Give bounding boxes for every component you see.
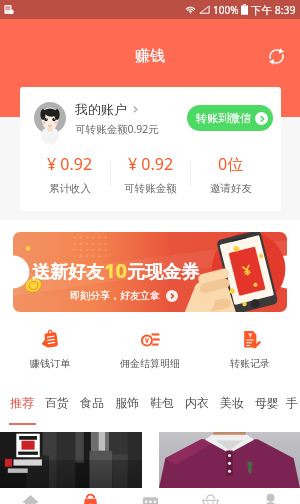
staticText: 转账到微信 <box>196 111 251 125</box>
button[interactable]: Categories <box>120 488 180 504</box>
staticText: 送新好友 <box>32 261 104 284</box>
staticText: 可转账金额 <box>124 182 177 195</box>
staticText: 手 <box>286 395 298 410</box>
staticText: 0位 <box>218 153 244 175</box>
staticText: 美妆 <box>220 395 244 410</box>
button[interactable]: 佣金结算明细 <box>100 320 200 378</box>
staticText: 赚钱 <box>135 47 165 66</box>
staticText: 服饰 <box>115 395 139 410</box>
button[interactable]: 0位 <box>191 143 270 205</box>
button[interactable]: 推荐 <box>4 388 39 416</box>
button[interactable]: 食品 <box>74 388 109 416</box>
staticText: 下午 8:39 <box>251 3 296 17</box>
button[interactable]: 赚钱订单 <box>0 320 100 378</box>
button[interactable]: ¥ 0.92 <box>111 143 190 205</box>
staticText: 100% <box>213 3 239 17</box>
staticText: 推荐 <box>10 395 34 410</box>
button[interactable]: Home <box>0 488 60 504</box>
staticText: 累计收入 <box>49 182 91 195</box>
staticText: 转账记录 <box>230 357 270 370</box>
staticText: ¥ 0.92 <box>47 153 93 175</box>
button[interactable]: 送新好友 <box>13 232 287 312</box>
button[interactable]: 服饰 <box>109 388 144 416</box>
staticText: 佣金结算明细 <box>120 357 180 370</box>
staticText: 鞋包 <box>150 395 174 410</box>
button[interactable] <box>159 432 300 488</box>
button[interactable]: 百货 <box>39 388 74 416</box>
staticText: ¥ 0.92 <box>128 153 174 175</box>
button[interactable]: Refresh <box>261 41 291 71</box>
button[interactable]: 转账记录 <box>200 320 300 378</box>
button[interactable]: Deals <box>60 488 120 504</box>
button[interactable]: 鞋包 <box>144 388 179 416</box>
staticText: 元现金券 <box>127 261 199 284</box>
staticText: 百货 <box>45 395 69 410</box>
button[interactable]: 手 <box>284 388 300 416</box>
staticText: 食品 <box>80 395 104 410</box>
button[interactable]: 转账到微信 <box>187 105 273 131</box>
button[interactable]: ¥ 0.92 <box>30 143 110 205</box>
staticText: 我的账户 <box>75 101 127 117</box>
staticText: 10 <box>104 257 127 284</box>
button[interactable] <box>0 432 142 488</box>
staticText: 母婴 <box>255 395 279 410</box>
button[interactable]: 内衣 <box>179 388 214 416</box>
staticText: 可转账金额0.92元 <box>75 122 159 136</box>
staticText: 邀请好友 <box>210 182 252 195</box>
button[interactable]: 美妆 <box>214 388 249 416</box>
button[interactable]: Cart <box>180 488 240 504</box>
staticText: 即刻分享，好友立拿 <box>70 289 160 302</box>
button[interactable]: 母婴 <box>249 388 284 416</box>
button[interactable]: Profile <box>240 488 300 504</box>
staticText: 内衣 <box>185 395 209 410</box>
button[interactable]: 我的账户 <box>34 87 273 149</box>
staticText: 赚钱订单 <box>30 357 70 370</box>
